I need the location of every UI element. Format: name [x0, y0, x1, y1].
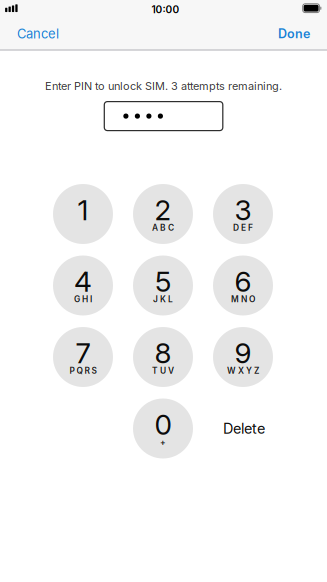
staticText: 5: [155, 265, 171, 298]
button[interactable]: Done: [273, 18, 315, 49]
staticText: Done: [278, 26, 310, 41]
button[interactable]: 4: [53, 255, 113, 315]
staticText: 3: [234, 193, 251, 227]
staticText: D E F: [233, 223, 253, 233]
staticText: 0: [154, 408, 171, 441]
staticText: 8: [154, 336, 171, 370]
staticText: P Q R S: [69, 366, 96, 376]
button[interactable]: Delete: [206, 398, 282, 458]
button[interactable]: 1: [53, 184, 113, 244]
staticText: W X Y Z: [227, 366, 259, 376]
staticText: 6: [234, 265, 251, 298]
staticText: 4: [74, 265, 92, 298]
button[interactable]: 3: [213, 184, 273, 244]
staticText: Cancel: [17, 26, 59, 41]
button[interactable]: 8: [133, 327, 193, 387]
staticText: M N O: [231, 294, 255, 304]
staticText: T U V: [152, 366, 174, 376]
staticText: 9: [234, 336, 251, 370]
button[interactable]: 7: [53, 327, 113, 387]
staticText: 1: [77, 193, 88, 227]
staticText: +: [160, 437, 166, 447]
button[interactable]: 2: [133, 184, 193, 244]
button[interactable]: 5: [133, 255, 193, 315]
button[interactable]: 9: [213, 327, 273, 387]
staticText: G H I: [74, 294, 92, 304]
button[interactable]: Cancel: [12, 18, 64, 49]
staticText: Delete: [223, 420, 265, 437]
staticText: 2: [154, 193, 171, 227]
staticText: A B C: [152, 223, 174, 233]
staticText: 7: [75, 336, 90, 370]
button[interactable]: 0: [133, 398, 193, 458]
staticText: J K L: [153, 294, 173, 304]
staticText: Enter PIN to unlock SIM. 3 attempts rema…: [45, 79, 282, 92]
button[interactable]: 6: [213, 255, 273, 315]
staticText: 10:00: [151, 3, 179, 16]
